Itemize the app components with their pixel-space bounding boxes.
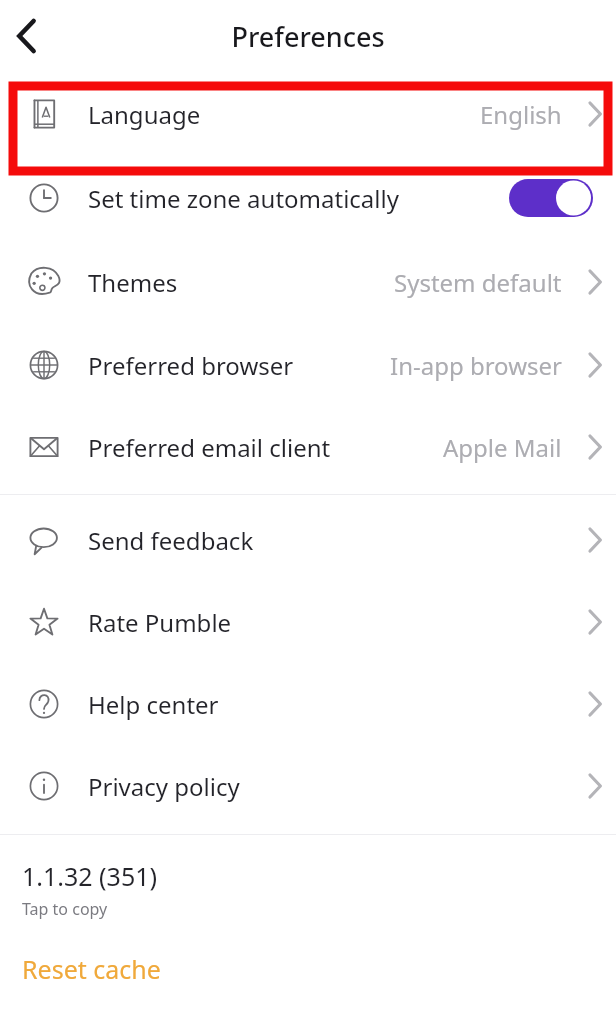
staticText: System default	[394, 266, 562, 299]
staticText: 1.1.32 (351)	[22, 859, 158, 893]
button[interactable]: Preferred browser	[0, 324, 616, 406]
button[interactable]: Send feedback	[0, 499, 616, 581]
button[interactable]: Preferred email client	[0, 406, 616, 488]
button[interactable]: Language	[0, 72, 616, 156]
staticText: Preferred browser	[88, 349, 294, 382]
button[interactable]: Rate Pumble	[0, 581, 616, 663]
button[interactable]: Back	[2, 12, 50, 60]
staticText: Apple Mail	[443, 431, 562, 464]
staticText: English	[480, 98, 562, 131]
staticText: Preferred email client	[88, 431, 331, 464]
staticText: Reset cache	[22, 952, 161, 986]
button[interactable]: Set time zone automatically	[0, 156, 616, 240]
staticText: Language	[88, 98, 201, 131]
staticText: Privacy policy	[88, 770, 240, 803]
staticText: Send feedback	[88, 524, 254, 557]
button[interactable]: Reset cache	[0, 950, 616, 996]
button[interactable]: Themes	[0, 240, 616, 324]
staticText: Rate Pumble	[88, 606, 232, 639]
staticText: In-app browser	[390, 349, 562, 382]
button[interactable]: Help center	[0, 663, 616, 745]
staticText: Help center	[88, 688, 219, 721]
staticText: Themes	[88, 266, 178, 299]
button[interactable]: 1.1.32 (351)	[0, 835, 616, 926]
button[interactable]: Privacy policy	[0, 745, 616, 827]
button[interactable]: Set time zone automatically toggle	[509, 179, 593, 217]
staticText: Tap to copy	[22, 898, 108, 920]
staticText: Preferences	[231, 18, 385, 55]
staticText: Set time zone automatically	[88, 182, 399, 215]
